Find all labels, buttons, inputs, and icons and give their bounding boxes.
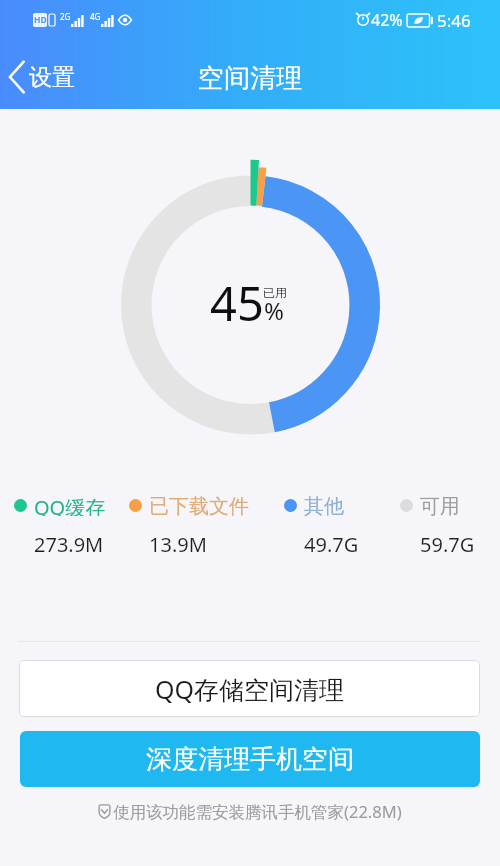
staticText: 设置	[29, 63, 75, 92]
staticText: 可用	[420, 494, 460, 516]
button[interactable]: Back to 设置	[0, 55, 89, 99]
staticText: 59.7G	[420, 531, 475, 558]
staticText: 已下载文件	[149, 494, 249, 516]
staticText: 空间清理	[198, 62, 302, 95]
staticText: 42%	[371, 9, 403, 31]
staticText: 使用该功能需安装腾讯手机管家(22.8M)	[113, 800, 402, 823]
button[interactable]: QQ缓存	[14, 494, 106, 516]
button[interactable]: 可用	[400, 494, 460, 516]
staticText: HD	[34, 14, 47, 26]
staticText: 13.9M	[149, 531, 207, 558]
staticText: 4G	[90, 11, 101, 22]
staticText: 5:46	[437, 9, 471, 32]
staticText: 45	[210, 271, 264, 335]
staticText: 49.7G	[304, 531, 359, 558]
staticText: 其他	[304, 494, 344, 516]
staticText: 深度清理手机空间	[146, 743, 354, 776]
staticText: 273.9M	[34, 531, 104, 558]
staticText: %	[264, 294, 284, 327]
button[interactable]: 其他	[284, 494, 344, 516]
staticText: 已用	[263, 285, 287, 300]
staticText: QQ缓存	[34, 494, 106, 516]
button[interactable]: QQ存储空间清理	[19, 660, 480, 717]
button[interactable]: 已下载文件	[129, 494, 249, 516]
button[interactable]: 深度清理手机空间	[20, 731, 480, 787]
staticText: QQ存储空间清理	[155, 672, 345, 706]
staticText: 2G	[60, 11, 71, 22]
